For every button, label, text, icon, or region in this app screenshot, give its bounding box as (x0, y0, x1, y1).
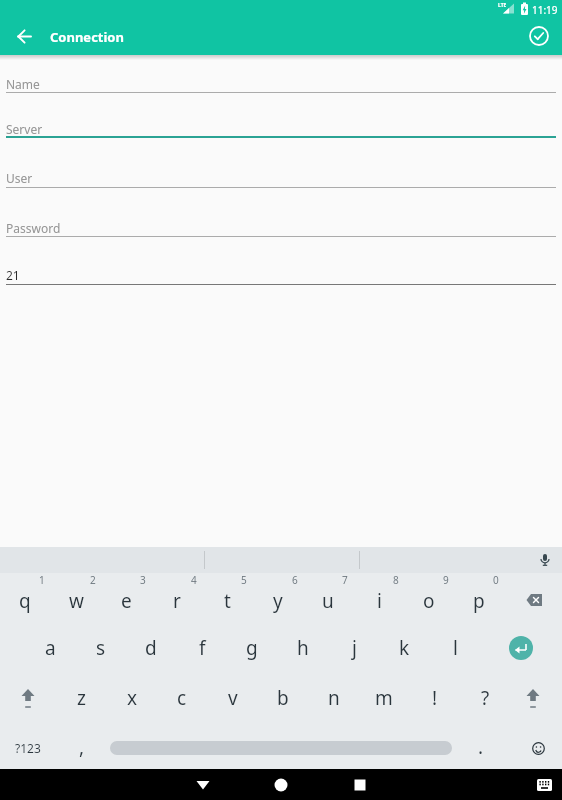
button[interactable]: . (459, 729, 503, 765)
staticText: a (45, 635, 56, 661)
button[interactable]: y (256, 583, 300, 619)
staticText: 3 (140, 573, 146, 587)
button[interactable] (531, 773, 557, 797)
staticText: x (127, 685, 138, 711)
button[interactable] (6, 18, 42, 54)
staticText: Connection (50, 28, 124, 46)
staticText: 7 (342, 573, 348, 587)
staticText: 1 (39, 573, 45, 587)
staticText: Server (6, 121, 43, 137)
button[interactable]: n (312, 680, 356, 716)
staticText: 2 (90, 573, 96, 587)
button[interactable] (6, 214, 556, 238)
button[interactable] (517, 684, 549, 712)
staticText: t (224, 588, 231, 614)
button[interactable] (521, 18, 557, 54)
button[interactable]: w (54, 583, 98, 619)
staticText: g (246, 635, 258, 661)
staticText: n (328, 685, 340, 711)
staticText: b (277, 685, 289, 711)
button[interactable] (342, 769, 378, 800)
staticText: y (273, 588, 283, 614)
staticText: z (77, 685, 86, 711)
button[interactable]: g (230, 630, 274, 666)
button[interactable]: t (205, 583, 249, 619)
button[interactable]: f (180, 630, 224, 666)
staticText: 9 (443, 573, 449, 587)
staticText: 0 (493, 573, 499, 587)
button[interactable]: c (160, 680, 204, 716)
button[interactable]: x (110, 680, 154, 716)
button[interactable]: e (104, 583, 148, 619)
staticText: v (228, 685, 238, 711)
staticText: u (322, 588, 334, 614)
staticText: 21 (6, 267, 20, 283)
staticText: h (297, 635, 309, 661)
button[interactable] (12, 684, 44, 712)
button[interactable]: ! (413, 680, 457, 716)
button[interactable]: a (28, 630, 72, 666)
button[interactable]: ? (463, 680, 507, 716)
staticText: 4 (191, 573, 197, 587)
button[interactable]: , (60, 729, 104, 765)
button[interactable] (6, 70, 556, 94)
button[interactable]: q (3, 583, 47, 619)
staticText: Name (6, 76, 40, 92)
button[interactable]: j (332, 630, 376, 666)
button[interactable] (6, 261, 556, 285)
staticText: f (199, 635, 206, 661)
staticText: ?123 (15, 740, 41, 756)
button[interactable] (185, 769, 221, 800)
staticText: p (473, 588, 485, 614)
button[interactable] (6, 164, 556, 188)
button[interactable] (110, 741, 452, 755)
staticText: 6 (292, 573, 298, 587)
button[interactable] (509, 636, 533, 660)
staticText: 11:19 (532, 3, 558, 17)
button[interactable] (6, 115, 556, 139)
staticText: ! (432, 685, 438, 711)
button[interactable]: o (407, 583, 451, 619)
button[interactable] (519, 586, 549, 614)
button[interactable]: ?123 (6, 736, 50, 760)
button[interactable] (533, 548, 557, 572)
staticText: 5 (241, 573, 247, 587)
staticText: q (19, 588, 31, 614)
staticText: d (145, 635, 157, 661)
button[interactable]: v (211, 680, 255, 716)
button[interactable]: p (457, 583, 501, 619)
button[interactable]: i (357, 583, 401, 619)
staticText: l (453, 635, 458, 661)
staticText: . (478, 734, 484, 760)
button[interactable]: r (155, 583, 199, 619)
button[interactable]: l (433, 630, 477, 666)
button[interactable]: u (306, 583, 350, 619)
staticText: j (352, 635, 357, 661)
staticText: i (377, 588, 382, 614)
staticText: s (96, 635, 106, 661)
staticText: LTE (498, 2, 507, 9)
staticText: , (79, 734, 85, 760)
staticText: r (173, 588, 181, 614)
staticText: o (423, 588, 435, 614)
button[interactable]: s (79, 630, 123, 666)
button[interactable]: b (261, 680, 305, 716)
button[interactable]: d (129, 630, 173, 666)
button[interactable]: m (362, 680, 406, 716)
staticText: 8 (393, 573, 399, 587)
button[interactable]: k (382, 630, 426, 666)
staticText: User (6, 170, 33, 186)
staticText: k (399, 635, 410, 661)
staticText: c (177, 685, 187, 711)
staticText: e (121, 588, 132, 614)
button[interactable]: z (59, 680, 103, 716)
button[interactable] (263, 769, 299, 800)
button[interactable]: h (281, 630, 325, 666)
button[interactable] (526, 736, 550, 760)
staticText: ? (481, 685, 490, 711)
